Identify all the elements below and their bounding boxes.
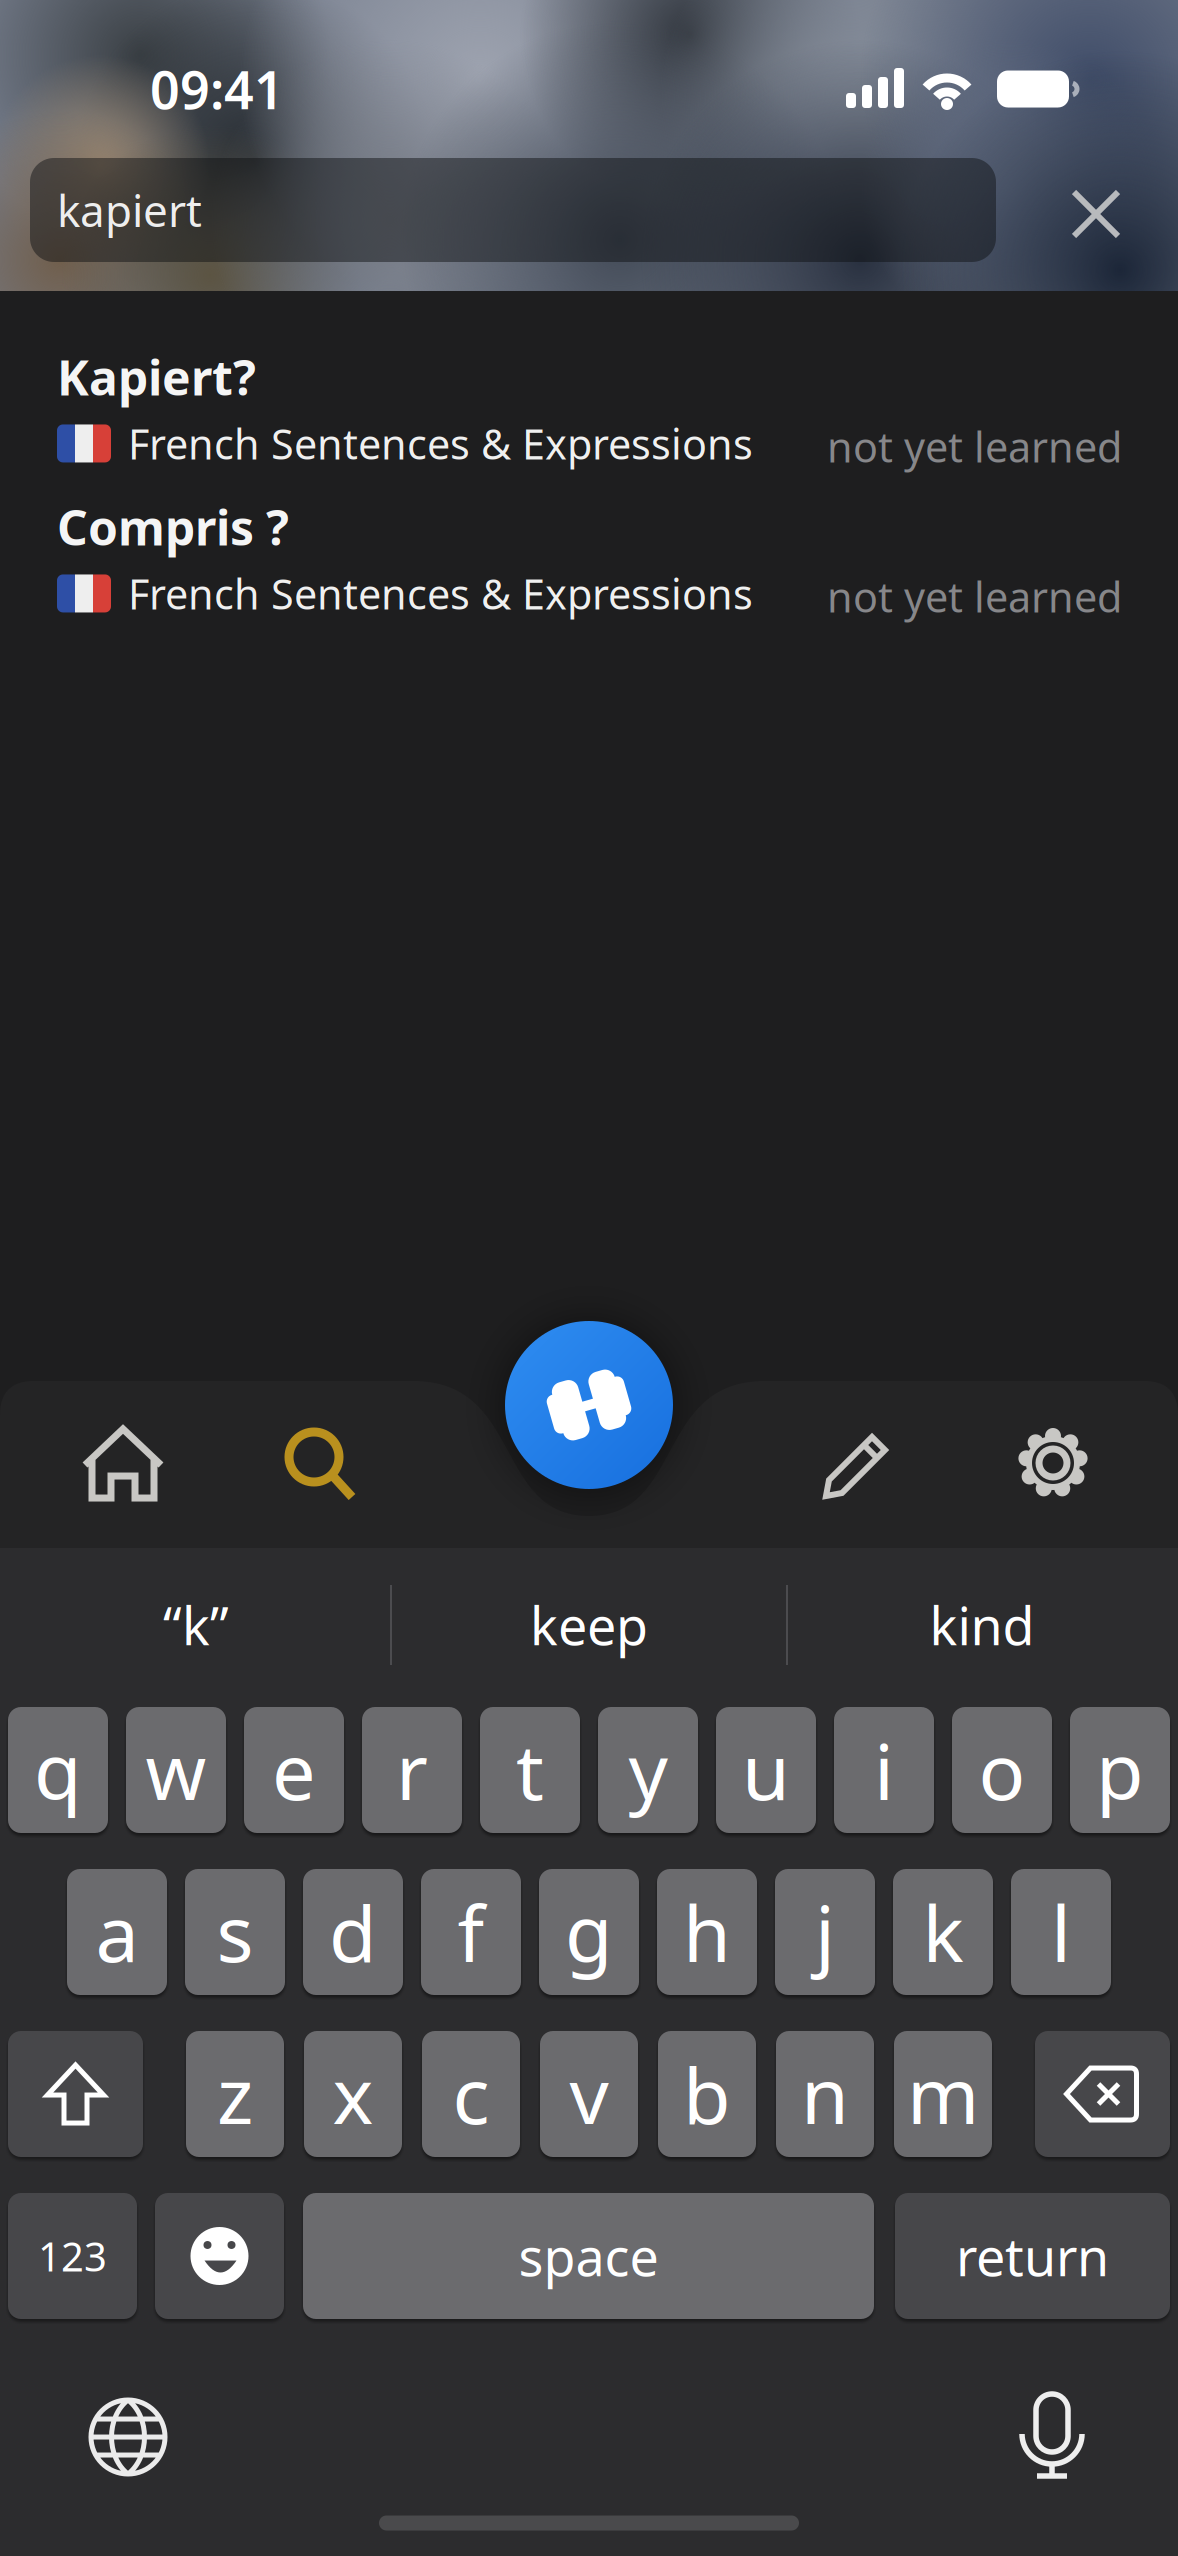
staticText: French Sentences & Expressions	[128, 416, 753, 471]
staticText: French Sentences & Expressions	[128, 566, 753, 621]
button[interactable]: keep	[399, 1575, 779, 1675]
button[interactable]: Dictate	[1002, 2387, 1102, 2487]
button[interactable]: Numbers	[8, 2193, 137, 2319]
staticText: s	[216, 1881, 253, 1983]
staticText: kapiert	[57, 181, 202, 239]
staticText: keep	[530, 1590, 648, 1660]
button[interactable]: t	[480, 1707, 580, 1833]
button[interactable]: n	[776, 2031, 874, 2157]
button[interactable]: Next keyboard	[78, 2387, 178, 2487]
staticText: j	[815, 1881, 835, 1983]
button[interactable]: space	[303, 2193, 874, 2319]
staticText: q	[34, 1719, 82, 1821]
staticText: m	[907, 2043, 979, 2145]
staticText: e	[272, 1719, 316, 1821]
button[interactable]: r	[362, 1707, 462, 1833]
button[interactable]: Clear search	[1054, 172, 1138, 256]
button[interactable]: q	[8, 1707, 108, 1833]
staticText: o	[978, 1719, 1025, 1821]
staticText: d	[329, 1881, 377, 1983]
button[interactable]: p	[1070, 1707, 1170, 1833]
staticText: 09:41	[150, 54, 284, 124]
staticText: Kapiert?	[57, 345, 256, 409]
button[interactable]: return	[895, 2193, 1170, 2319]
button[interactable]: b	[658, 2031, 756, 2157]
button[interactable]: f	[421, 1869, 521, 1995]
button[interactable]: h	[657, 1869, 757, 1995]
button[interactable]: Home	[78, 1419, 168, 1509]
staticText: kind	[929, 1590, 1034, 1660]
staticText: “k”	[163, 1590, 229, 1660]
staticText: Compris ?	[57, 495, 289, 559]
staticText: a	[95, 1881, 138, 1983]
button[interactable]: a	[67, 1869, 167, 1995]
staticText: g	[565, 1881, 613, 1983]
button[interactable]: d	[303, 1869, 403, 1995]
button[interactable]: z	[186, 2031, 284, 2157]
staticText: return	[956, 2221, 1109, 2291]
button[interactable]: Edit	[812, 1418, 902, 1508]
staticText: f	[457, 1881, 484, 1983]
staticText: space	[518, 2221, 658, 2291]
staticText: w	[145, 1719, 206, 1821]
button[interactable]: u	[716, 1707, 816, 1833]
button[interactable]: x	[304, 2031, 402, 2157]
staticText: k	[922, 1881, 963, 1983]
staticText: t	[516, 1719, 544, 1821]
staticText: not yet learned	[827, 569, 1122, 624]
staticText: v	[569, 2043, 608, 2145]
button[interactable]: Emoji	[155, 2193, 284, 2319]
staticText: c	[452, 2043, 489, 2145]
button[interactable]: Kapiert?	[0, 345, 1178, 473]
button[interactable]: Practice	[505, 1321, 673, 1489]
button[interactable]: k	[893, 1869, 993, 1995]
button[interactable]: l	[1011, 1869, 1111, 1995]
button[interactable]: i	[834, 1707, 934, 1833]
staticText: x	[332, 2043, 373, 2145]
button[interactable]: g	[539, 1869, 639, 1995]
staticText: i	[874, 1719, 894, 1821]
button[interactable]: e	[244, 1707, 344, 1833]
button[interactable]: Delete	[1035, 2031, 1170, 2157]
staticText: y	[628, 1719, 667, 1821]
button[interactable]: w	[126, 1707, 226, 1833]
staticText: r	[396, 1719, 428, 1821]
staticText: 123	[38, 2229, 107, 2282]
button[interactable]: j	[775, 1869, 875, 1995]
button[interactable]: s	[185, 1869, 285, 1995]
staticText: z	[217, 2043, 253, 2145]
button[interactable]: “k”	[6, 1575, 386, 1675]
staticText: p	[1096, 1719, 1144, 1821]
button[interactable]: c	[422, 2031, 520, 2157]
staticText: b	[683, 2043, 731, 2145]
staticText: n	[801, 2043, 849, 2145]
button[interactable]: kind	[792, 1575, 1172, 1675]
button[interactable]: o	[952, 1707, 1052, 1833]
button[interactable]: Settings	[1005, 1415, 1101, 1511]
button[interactable]: Compris ?	[0, 495, 1178, 623]
staticText: h	[683, 1881, 731, 1983]
button[interactable]: v	[540, 2031, 638, 2157]
staticText: u	[742, 1719, 790, 1821]
button[interactable]: Search	[275, 1418, 365, 1508]
button[interactable]: m	[894, 2031, 992, 2157]
staticText: l	[1051, 1881, 1071, 1983]
button[interactable]: y	[598, 1707, 698, 1833]
button[interactable]: kapiert	[30, 158, 996, 262]
button[interactable]: Shift	[8, 2031, 143, 2157]
staticText: not yet learned	[827, 419, 1122, 474]
